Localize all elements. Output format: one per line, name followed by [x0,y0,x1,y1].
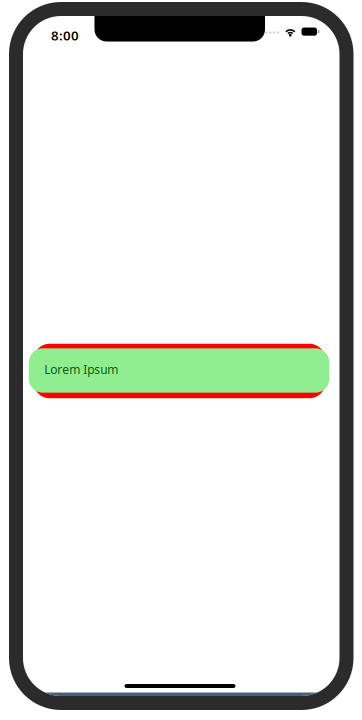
staticText: 8:00 [51,26,79,44]
staticText: Lorem Ipsum [44,361,118,377]
button[interactable]: Lorem Ipsum [29,344,329,398]
